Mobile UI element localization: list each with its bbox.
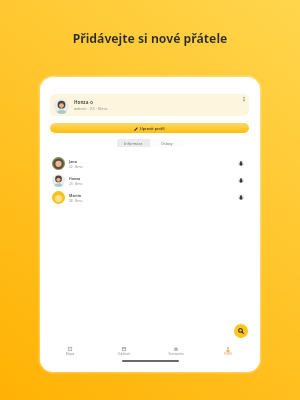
staticText: Honza (74, 99, 89, 105)
staticText: admin · 23 · Brno (74, 106, 108, 112)
staticText: Profil (206, 352, 250, 356)
button[interactable]: Informace (117, 139, 150, 147)
button[interactable]: Přidat přítele (236, 193, 246, 203)
button[interactable]: Martin (40, 189, 260, 206)
staticText: Upravit profil (140, 126, 165, 131)
staticText: Martin (69, 193, 82, 198)
staticText: Přidávejte si nové přátele (0, 30, 300, 47)
staticText: 28 · Brno (69, 199, 83, 203)
button[interactable]: Jana (40, 155, 260, 172)
button[interactable]: Mapa (48, 343, 92, 356)
button[interactable]: Seznamka (154, 343, 198, 356)
staticText: 22 · Brno (69, 165, 83, 169)
button[interactable]: Profil (206, 343, 250, 356)
staticText: Mapa (48, 352, 92, 356)
staticText: Oslavy (161, 141, 173, 146)
button[interactable]: Přidat přítele (236, 159, 246, 169)
staticText: Jana (69, 159, 77, 164)
button[interactable]: Upravit profil (50, 123, 249, 133)
staticText: Informace (124, 141, 143, 146)
button[interactable]: Hledat (234, 324, 248, 338)
button[interactable]: Události (102, 343, 146, 356)
staticText: Honza (69, 176, 81, 181)
button[interactable]: Oslavy (150, 139, 184, 147)
staticText: 23 · Brno (69, 182, 83, 186)
staticText: Události (102, 352, 146, 356)
button[interactable]: Honza (40, 172, 260, 189)
button[interactable]: Více možností (240, 95, 248, 103)
button[interactable]: Přidat přítele (236, 176, 246, 186)
staticText: Seznamka (154, 352, 198, 356)
button[interactable]: Honza (50, 94, 249, 116)
